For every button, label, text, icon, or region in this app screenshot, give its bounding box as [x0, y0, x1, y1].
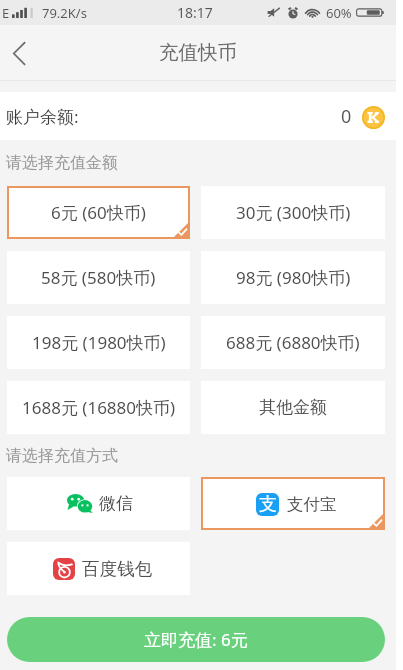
button[interactable]: Back — [0, 25, 37, 81]
staticText: 60% — [326, 4, 352, 22]
staticText: K — [367, 109, 380, 127]
staticText: 0 — [341, 104, 352, 129]
button[interactable]: 58元 (580快币) — [7, 251, 190, 304]
staticText: E — [2, 4, 10, 22]
button[interactable]: 6元 (60快币) — [7, 186, 190, 239]
button[interactable]: 1688元 (16880快币) — [7, 381, 190, 434]
staticText: 支付宝 — [287, 494, 337, 515]
staticText: 18:17 — [177, 3, 213, 22]
button[interactable]: 98元 (980快币) — [201, 251, 385, 304]
button[interactable]: 688元 (6880快币) — [201, 316, 385, 369]
staticText: 79.2K/s — [42, 4, 87, 22]
staticText: 98元 (980快币) — [236, 266, 351, 289]
button[interactable]: 198元 (1980快币) — [7, 316, 190, 369]
staticText: 请选择充值方式 — [6, 446, 118, 466]
button[interactable]: 支 — [201, 477, 385, 530]
staticText: 688元 (6880快币) — [226, 331, 360, 354]
button[interactable]: 百度钱包 — [7, 542, 190, 595]
staticText: 微信 — [99, 493, 133, 514]
staticText: 其他金额 — [259, 397, 327, 418]
button[interactable]: 其他金额 — [201, 381, 385, 434]
staticText: 账户余额: — [6, 105, 79, 128]
button[interactable]: 立即充值: 6元 — [7, 617, 385, 662]
staticText: 支 — [259, 493, 277, 516]
staticText: 充值快币 — [159, 40, 237, 65]
staticText: 30元 (300快币) — [236, 201, 351, 224]
button[interactable]: 微信 — [7, 477, 190, 530]
button[interactable]: 30元 (300快币) — [201, 186, 385, 239]
staticText: 请选择充值金额 — [6, 153, 118, 173]
staticText: 立即充值: 6元 — [144, 628, 248, 651]
staticText: 1688元 (16880快币) — [22, 396, 176, 419]
staticText: 6元 (60快币) — [51, 201, 146, 224]
staticText: 198元 (1980快币) — [32, 331, 166, 354]
staticText: 百度钱包 — [82, 558, 152, 580]
staticText: 58元 (580快币) — [41, 266, 156, 289]
